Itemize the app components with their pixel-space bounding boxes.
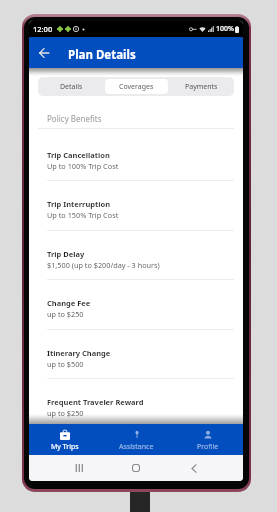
- button[interactable]: Back: [186, 460, 202, 476]
- button[interactable]: Payments: [170, 79, 233, 94]
- staticText: Itinerary Change: [47, 348, 111, 358]
- staticText: Trip Interruption: [47, 199, 111, 209]
- button[interactable]: Trip Cancellation: [29, 132, 243, 182]
- staticText: 100%: [216, 24, 234, 34]
- button[interactable]: Itinerary Change: [29, 330, 243, 380]
- button[interactable]: Recents: [71, 460, 87, 476]
- button[interactable]: Back: [35, 44, 53, 62]
- staticText: $1,500 (up to $200/day - 3 hours): [47, 260, 160, 270]
- staticText: Up to 150% Trip Cost: [47, 210, 119, 220]
- staticText: Trip Delay: [47, 249, 85, 259]
- staticText: Assistance: [119, 442, 154, 452]
- button[interactable]: Frequent Traveler Reward: [29, 379, 243, 429]
- staticText: Policy Benefits: [47, 113, 102, 124]
- button[interactable]: Home: [128, 460, 144, 476]
- button[interactable]: My Trips: [29, 424, 101, 455]
- staticText: 12:00: [33, 24, 53, 34]
- button[interactable]: Assistance: [101, 424, 172, 455]
- staticText: Frequent Traveler Reward: [47, 397, 144, 407]
- staticText: up to $500: [47, 359, 84, 369]
- staticText: Plan Details: [68, 47, 136, 63]
- button[interactable]: Change Fee: [29, 280, 243, 330]
- button[interactable]: Coverages: [105, 79, 168, 94]
- staticText: My Trips: [51, 442, 79, 452]
- staticText: Up to 100% Trip Cost: [47, 161, 119, 171]
- staticText: Details: [60, 82, 83, 92]
- staticText: Change Fee: [47, 298, 91, 308]
- staticText: up to $250: [47, 408, 84, 418]
- button[interactable]: Profile: [172, 424, 243, 455]
- staticText: Trip Cancellation: [47, 150, 110, 160]
- staticText: Profile: [197, 442, 219, 452]
- button[interactable]: Trip Interruption: [29, 181, 243, 231]
- button[interactable]: Trip Delay: [29, 231, 243, 281]
- staticText: Payments: [185, 82, 218, 92]
- staticText: Coverages: [119, 82, 154, 92]
- button[interactable]: Details: [39, 79, 103, 94]
- staticText: up to $250: [47, 309, 84, 319]
